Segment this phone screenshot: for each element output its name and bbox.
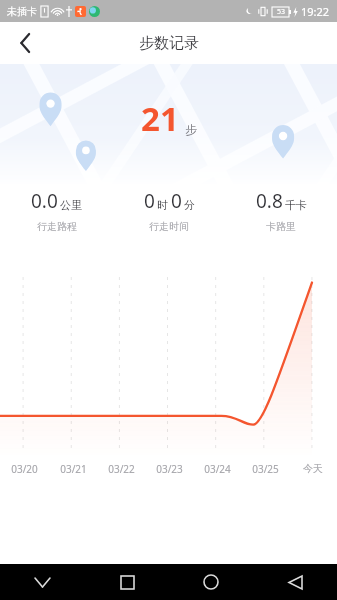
staticText: 0.0 xyxy=(31,188,58,214)
staticText: 03/20 xyxy=(11,462,38,476)
staticText: 千卡 xyxy=(285,198,307,212)
button[interactable]: Back xyxy=(8,26,42,60)
staticText: 19:22 xyxy=(301,4,330,19)
staticText: 03/23 xyxy=(156,462,183,476)
staticText: 21 xyxy=(141,96,179,141)
staticText: 公里 xyxy=(60,198,82,212)
button[interactable]: Hide keyboard xyxy=(0,564,85,600)
staticText: 卡路里 xyxy=(266,220,296,233)
staticText: 0.8 xyxy=(256,188,283,214)
staticText: 步数记录 xyxy=(139,34,199,53)
staticText: 步 xyxy=(185,122,197,137)
staticText: 03/21 xyxy=(60,462,87,476)
staticText: 03/24 xyxy=(204,462,231,476)
staticText: 分 xyxy=(184,198,195,212)
button[interactable]: Back xyxy=(253,564,337,600)
staticText: 03/25 xyxy=(252,462,279,476)
staticText: 行走时间 xyxy=(149,220,189,233)
staticText: 行走路程 xyxy=(37,220,77,233)
staticText: 未插卡 xyxy=(7,5,37,18)
staticText: 时 xyxy=(157,198,168,212)
staticText: 03/22 xyxy=(108,462,135,476)
staticText: 今天 xyxy=(303,462,323,475)
staticText: 0 xyxy=(144,188,155,214)
button[interactable]: Home xyxy=(169,564,253,600)
button[interactable]: Recent apps xyxy=(85,564,169,600)
staticText: 0 xyxy=(171,188,182,214)
staticText: 53 xyxy=(277,7,286,17)
